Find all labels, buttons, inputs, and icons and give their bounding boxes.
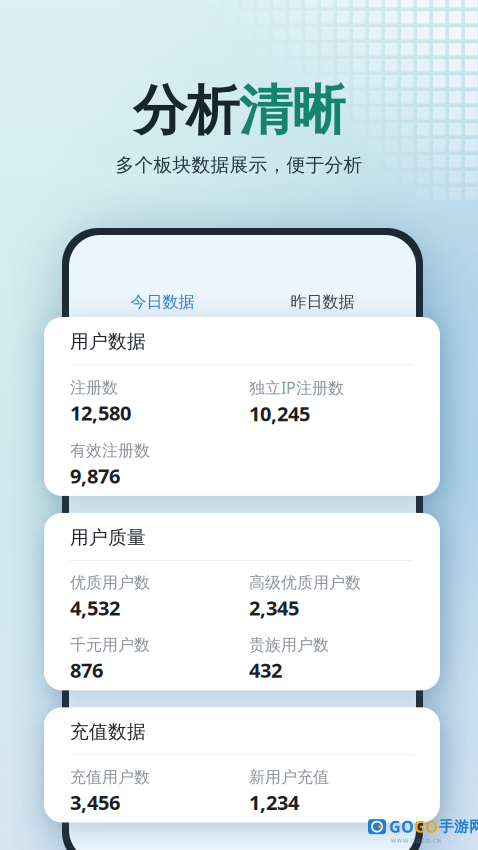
staticText: 3,456 bbox=[70, 789, 120, 815]
staticText: 432 bbox=[249, 657, 282, 683]
staticText: 4,532 bbox=[70, 594, 120, 621]
staticText: 贵族用户数 bbox=[249, 635, 329, 655]
staticText: W W W . G O G O . C N bbox=[391, 837, 441, 844]
staticText: 千元用户数 bbox=[70, 635, 150, 655]
staticText: 高级优质用户数 bbox=[249, 573, 361, 593]
staticText: 优质用户数 bbox=[70, 573, 150, 593]
staticText: 昨日数据 bbox=[290, 292, 354, 312]
staticText: 多个板块数据展示，便于分析 bbox=[115, 153, 362, 176]
staticText: 独立IP注册数 bbox=[249, 377, 344, 398]
staticText: 1,234 bbox=[249, 789, 299, 815]
staticText: 2,345 bbox=[249, 594, 299, 621]
staticText: 新用户充值 bbox=[249, 767, 329, 787]
staticText: 清晰 bbox=[239, 78, 345, 143]
button[interactable]: 昨日数据 bbox=[258, 288, 386, 316]
staticText: 分析 bbox=[133, 78, 239, 143]
staticText: 用户数据 bbox=[70, 330, 146, 353]
staticText: GO bbox=[414, 816, 439, 837]
staticText: 用户质量 bbox=[70, 526, 146, 549]
staticText: 9,876 bbox=[70, 462, 120, 489]
staticText: 手游网 bbox=[439, 818, 478, 836]
staticText: 876 bbox=[70, 657, 103, 683]
staticText: 今日数据 bbox=[130, 292, 194, 312]
staticText: 充值数据 bbox=[70, 720, 146, 743]
staticText: 有效注册数 bbox=[70, 441, 150, 460]
staticText: 注册数 bbox=[70, 378, 118, 397]
button[interactable]: 今日数据 bbox=[98, 288, 226, 316]
staticText: 充值用户数 bbox=[70, 767, 150, 787]
staticText: 12,580 bbox=[70, 399, 131, 426]
staticText: GO bbox=[389, 816, 414, 837]
staticText: 10,245 bbox=[249, 400, 310, 427]
